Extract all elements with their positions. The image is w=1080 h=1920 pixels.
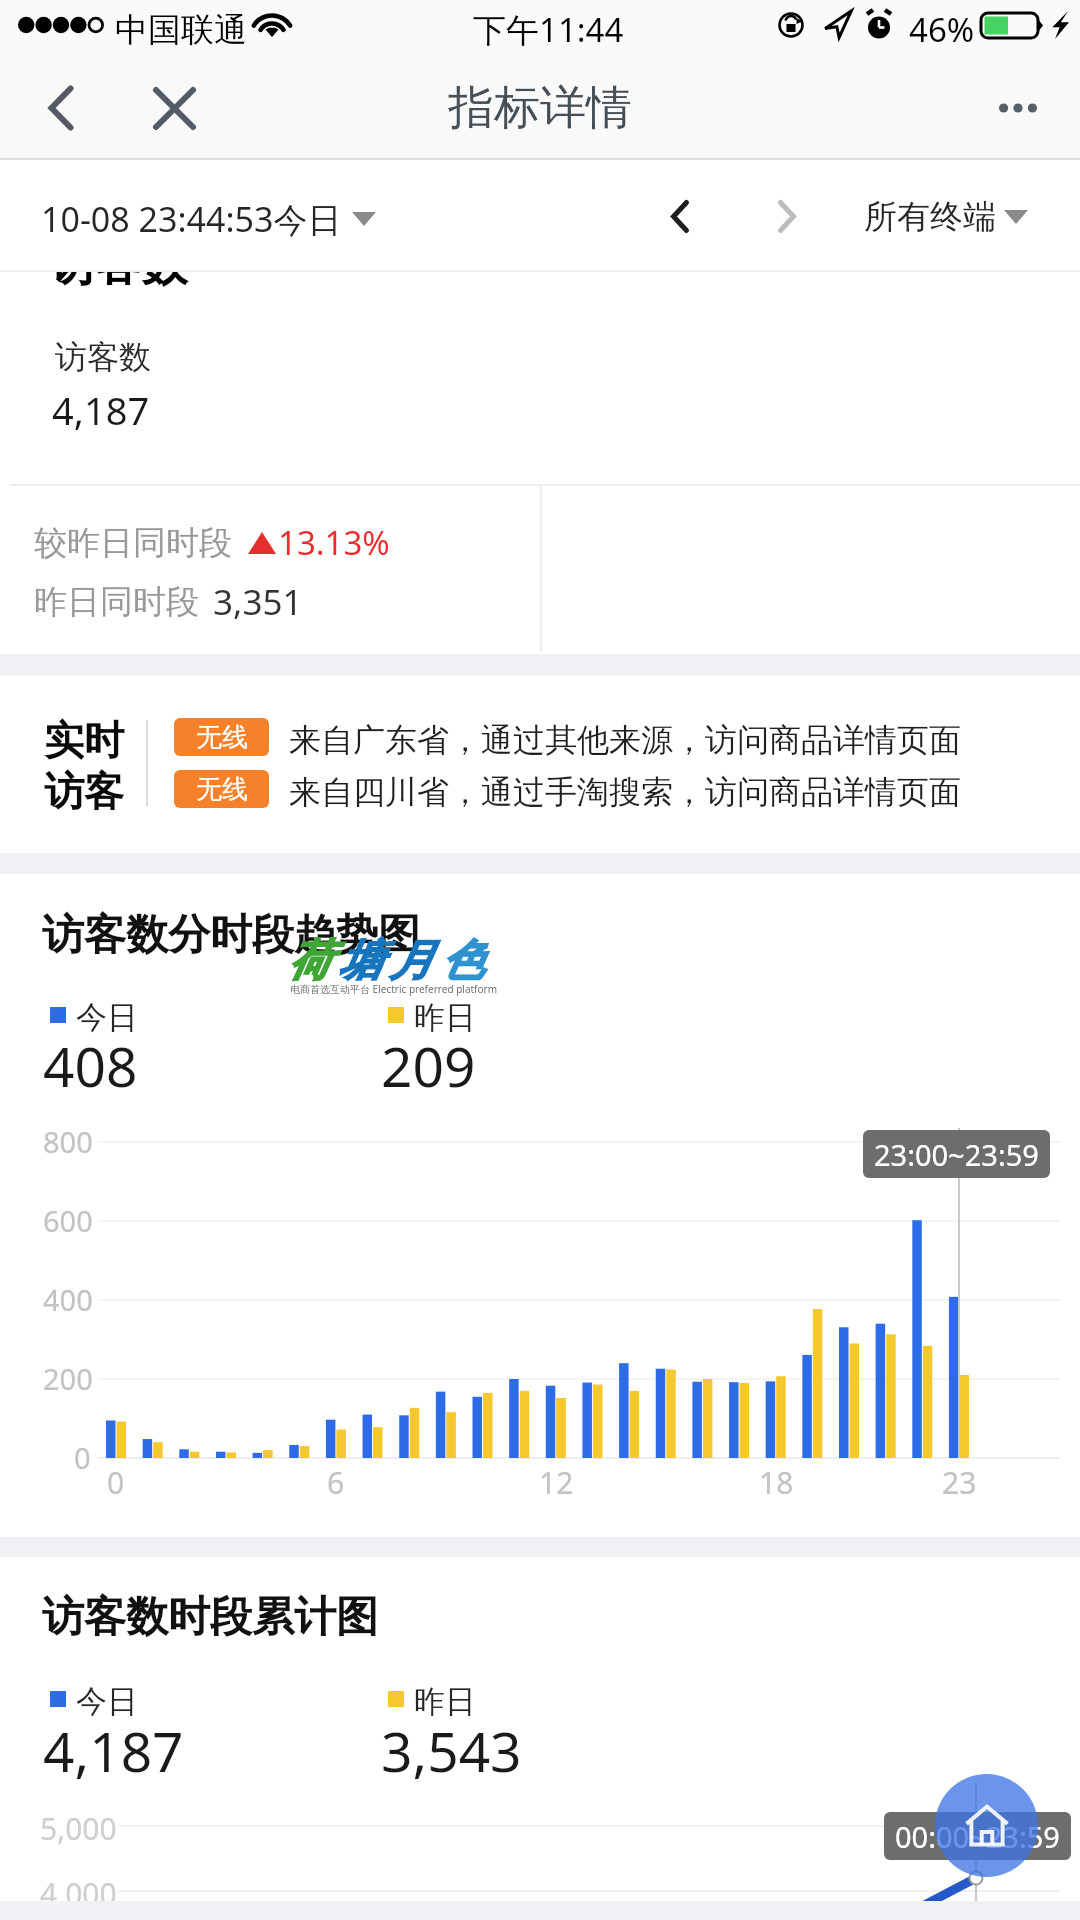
button[interactable]: Close [129,56,219,160]
staticText: 访客数 [55,337,151,377]
staticText: 无线 [196,773,248,806]
staticText: 昨日同时段 [34,581,199,623]
staticText: 来自广东省，通过其他来源，访问商品详情页面 [289,720,961,760]
staticText: 月 [390,934,441,988]
staticText: 0 [107,1462,125,1503]
staticText: 塘 [339,934,390,988]
staticText: 色 [441,934,492,988]
button[interactable]: More options [968,56,1068,160]
staticText: 4,000 [40,1873,117,1914]
staticText: 0 [74,1438,91,1477]
staticText: 18 [759,1462,794,1503]
staticText: 3,351 [213,578,303,626]
staticText: 4,187 [43,1713,184,1788]
staticText: 6 [327,1462,345,1503]
staticText: 今日 [76,1682,138,1721]
staticText: 昨日 [414,1682,476,1721]
staticText: 访客 [44,766,124,816]
staticText: 600 [43,1201,93,1240]
button[interactable]: Home [935,1774,1038,1877]
staticText: 荷 [288,934,339,988]
staticText: 10-08 23:44:53今日 [41,196,342,242]
staticText: 5,000 [40,1808,117,1849]
staticText: 下午11:44 [473,7,624,52]
staticText: 800 [43,1122,93,1161]
button[interactable]: 所有终端 [864,196,1028,238]
staticText: 访客数分时段趋势图 [42,909,420,962]
staticText: 400 [43,1280,93,1319]
staticText: 3,543 [381,1713,522,1788]
staticText: 所有终端 [864,196,996,238]
staticText: 昨日 [414,998,476,1037]
button[interactable]: Back [16,56,106,160]
staticText: 46% [909,7,975,52]
staticText: 访客数时段累计图 [42,1591,378,1644]
staticText: 13.13% [278,520,390,565]
button[interactable]: Next period [747,176,827,256]
staticText: 408 [43,1028,138,1103]
staticText: 23 [942,1462,977,1503]
staticText: 中国联通 [115,9,247,51]
staticText: 今日 [76,998,138,1037]
staticText: 200 [43,1359,93,1398]
staticText: 4,187 [52,384,150,436]
staticText: 00:00~23:59 [895,1817,1060,1856]
staticText: 23:00~23:59 [874,1135,1039,1174]
staticText: 电商首选互动平台 Electric preferred platform [290,982,498,996]
staticText: 访客数 [49,236,187,294]
staticText: 实时 [44,715,124,765]
staticText: 指标详情 [448,79,632,137]
button[interactable]: 10-08 23:44:53今日 [41,196,376,242]
staticText: 来自四川省，通过手淘搜索，访问商品详情页面 [289,772,961,812]
staticText: 较昨日同时段 [34,522,232,564]
staticText: 12 [539,1462,574,1503]
staticText: 无线 [196,721,248,754]
button[interactable]: Previous period [640,176,720,256]
staticText: 209 [381,1028,476,1103]
